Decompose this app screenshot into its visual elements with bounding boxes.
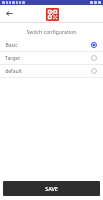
- button[interactable]: SAVE: [3, 181, 100, 196]
- button[interactable]: default: [0, 65, 103, 77]
- staticText: Target: [5, 55, 20, 62]
- button[interactable]: Target: [0, 52, 103, 64]
- staticText: default: [5, 68, 22, 75]
- button[interactable]: Back: [3, 7, 16, 20]
- button[interactable]: Basic: [0, 39, 103, 51]
- button[interactable]: App logo: [45, 7, 59, 21]
- staticText: Basic: [5, 42, 18, 49]
- staticText: SAVE: [45, 185, 58, 192]
- staticText: Switch configuration: [26, 28, 77, 35]
